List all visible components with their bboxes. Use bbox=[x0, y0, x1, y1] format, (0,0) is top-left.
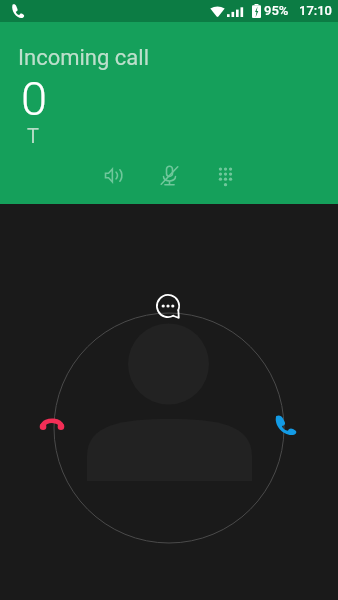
button[interactable]: Decline call bbox=[30, 402, 74, 446]
button[interactable]: Dialpad bbox=[203, 153, 247, 197]
staticText: 17:10 bbox=[299, 3, 333, 18]
staticText: 0 bbox=[21, 71, 48, 126]
staticText: Incoming call bbox=[18, 45, 149, 71]
button[interactable]: Mute microphone bbox=[147, 153, 191, 197]
button[interactable]: Accept call bbox=[262, 403, 306, 447]
staticText: 95% bbox=[264, 3, 289, 18]
staticText: T bbox=[27, 124, 39, 147]
button[interactable]: Speaker bbox=[91, 153, 135, 197]
